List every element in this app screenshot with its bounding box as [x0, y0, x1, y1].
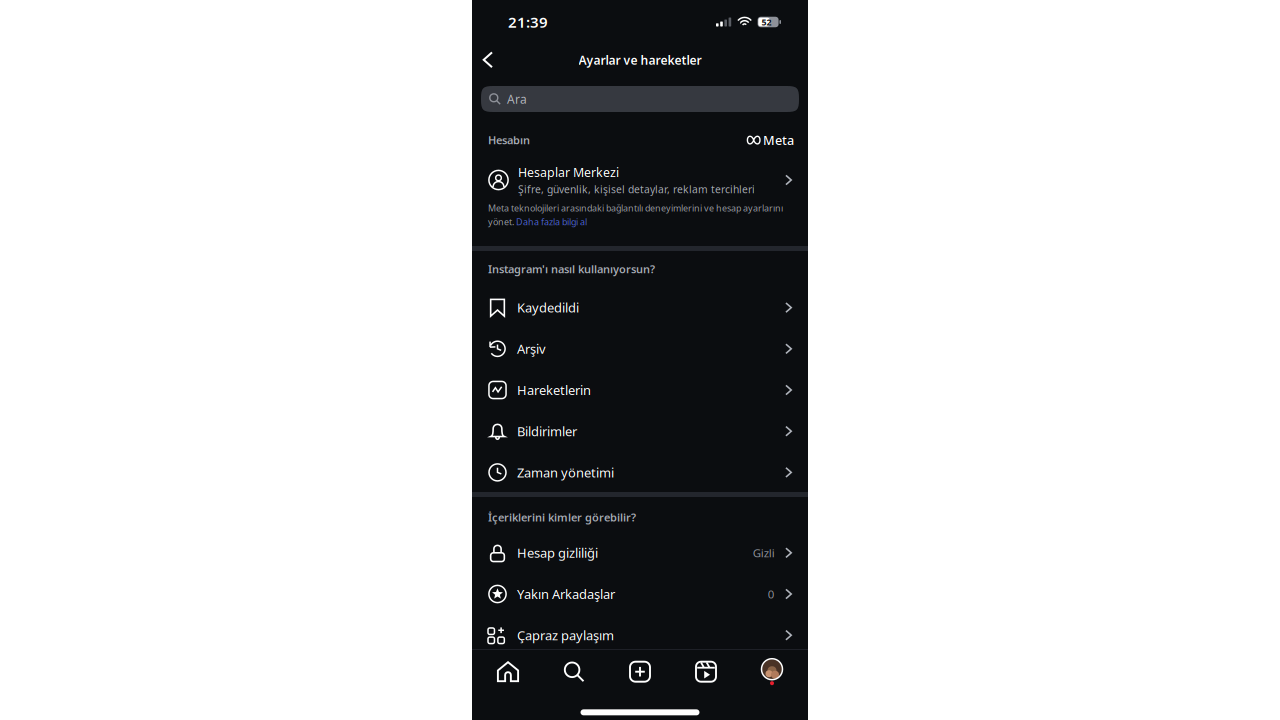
- button[interactable]: Hareketlerin: [472, 369, 808, 411]
- button[interactable]: Geri: [473, 44, 503, 76]
- staticText: Meta: [763, 132, 794, 148]
- staticText: Yakın Arkadaşlar: [517, 585, 615, 603]
- button[interactable]: Reels: [682, 652, 730, 692]
- button[interactable]: Yakın Arkadaşlar: [472, 573, 808, 615]
- staticText: Instagram'ı nasıl kullanıyorsun?: [488, 262, 655, 276]
- staticText: Hesap gizliliği: [517, 544, 598, 561]
- button[interactable]: Hesaplar Merkezi: [472, 156, 808, 202]
- staticText: Gizli: [753, 545, 775, 560]
- staticText: Ara: [507, 91, 527, 107]
- staticText: Ayarlar ve hareketler: [578, 52, 701, 68]
- button[interactable]: Ana Sayfa: [484, 652, 532, 692]
- staticText: Daha fazla bilgi al: [516, 216, 587, 228]
- staticText: Zaman yönetimi: [517, 464, 614, 481]
- button[interactable]: Bildirimler: [472, 411, 808, 452]
- button[interactable]: Ara: [550, 652, 598, 692]
- button[interactable]: Kaydedildi: [472, 287, 808, 328]
- staticText: Bildirimler: [517, 423, 577, 440]
- staticText: Arşiv: [517, 340, 546, 357]
- button[interactable]: Ara: [481, 86, 799, 112]
- staticText: Kaydedildi: [517, 299, 579, 316]
- staticText: Meta teknolojileri arasındaki bağlantılı…: [488, 202, 783, 214]
- staticText: 0: [768, 586, 775, 602]
- button[interactable]: Arşiv: [472, 328, 808, 369]
- staticText: İçeriklerini kimler görebilir?: [488, 510, 636, 524]
- staticText: 52: [762, 16, 772, 28]
- staticText: Hesabın: [488, 133, 530, 147]
- staticText: Hareketlerin: [517, 381, 591, 399]
- button[interactable]: Oluştur: [616, 652, 664, 692]
- staticText: Şifre, güvenlik, kişisel detaylar, rekla…: [518, 182, 755, 196]
- button[interactable]: Çapraz paylaşım: [472, 615, 808, 656]
- button[interactable]: Zaman yönetimi: [472, 452, 808, 493]
- staticText: 21:39: [508, 12, 548, 32]
- staticText: Hesaplar Merkezi: [518, 164, 619, 180]
- button[interactable]: Profil: [748, 652, 796, 692]
- button[interactable]: Hesap gizliliği: [472, 532, 808, 573]
- staticText: Çapraz paylaşım: [517, 627, 614, 644]
- staticText: yönet.: [488, 216, 516, 228]
